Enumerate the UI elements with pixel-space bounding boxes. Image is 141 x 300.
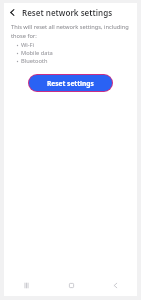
staticText: Reset network settings [22, 7, 113, 18]
button[interactable]: Back [93, 274, 137, 296]
staticText: Bluetooth [21, 57, 48, 65]
button[interactable]: Reset settings [29, 75, 112, 91]
button[interactable]: Recents [4, 274, 49, 296]
staticText: Wi-Fi [21, 41, 35, 49]
staticText: Reset settings [47, 79, 94, 88]
staticText: This will reset all network settings, in… [11, 23, 131, 39]
staticText: Mobile data [21, 49, 53, 57]
button[interactable]: Home [49, 274, 93, 296]
button[interactable]: Back [6, 6, 19, 19]
